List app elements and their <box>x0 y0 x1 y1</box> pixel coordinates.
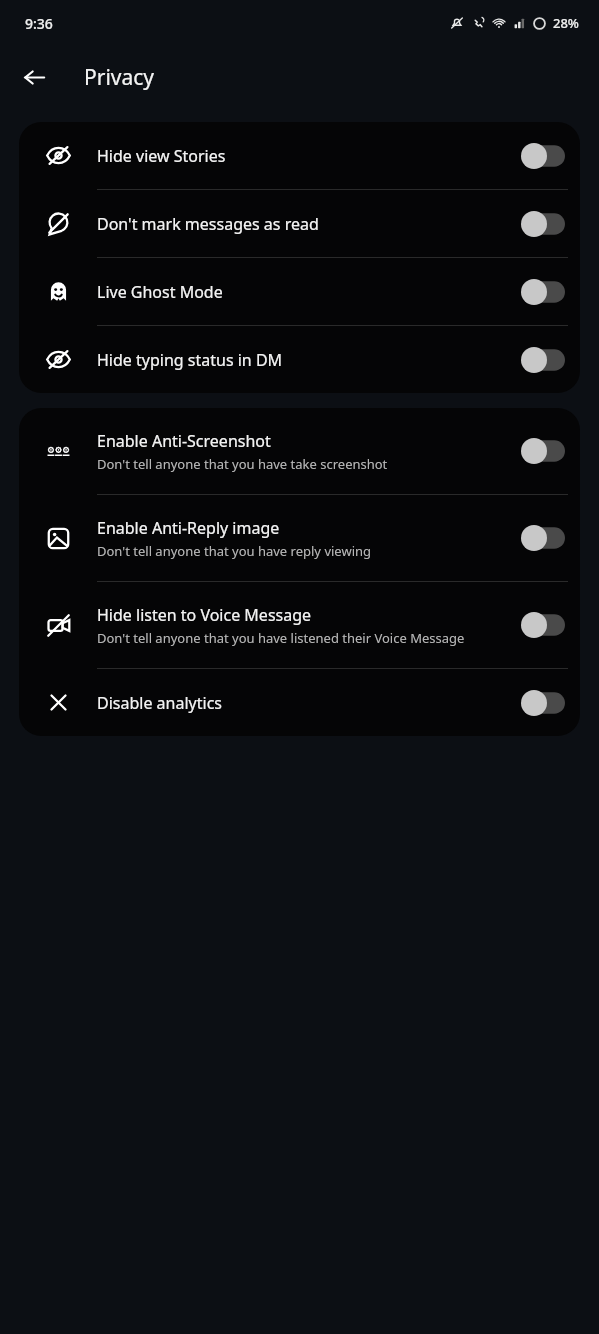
button[interactable]: Enable Anti-Screenshot <box>19 408 580 494</box>
staticText: Live Ghost Mode <box>97 281 223 303</box>
staticText: Hide view Stories <box>97 145 226 167</box>
button[interactable]: Don't mark messages as read toggle <box>506 190 580 257</box>
button[interactable]: Hide view Stories <box>19 122 580 189</box>
button[interactable]: Hide listen to Voice Message toggle <box>506 582 580 668</box>
button[interactable]: Disable analytics <box>19 669 580 736</box>
staticText: Don't tell anyone that you have listened… <box>97 629 465 647</box>
button[interactable]: Enable Anti-Reply image toggle <box>506 495 580 581</box>
button[interactable]: Back <box>12 55 56 99</box>
staticText: 28% <box>553 14 579 32</box>
staticText: Don't tell anyone that you have reply vi… <box>97 542 372 560</box>
staticText: Hide listen to Voice Message <box>97 604 312 626</box>
button[interactable]: Hide view Stories toggle <box>506 122 580 189</box>
button[interactable]: Disable analytics toggle <box>506 669 580 736</box>
button[interactable]: Hide listen to Voice Message <box>19 582 580 668</box>
button[interactable]: Live Ghost Mode toggle <box>506 258 580 325</box>
button[interactable]: Hide typing status in DM toggle <box>506 326 580 393</box>
button[interactable]: Don't mark messages as read <box>19 190 580 257</box>
button[interactable]: Live Ghost Mode <box>19 258 580 325</box>
staticText: 9:36 <box>25 14 53 33</box>
button[interactable]: Enable Anti-Reply image <box>19 495 580 581</box>
staticText: Disable analytics <box>97 692 222 714</box>
staticText: Hide typing status in DM <box>97 349 283 371</box>
staticText: Don't mark messages as read <box>97 213 319 235</box>
staticText: Enable Anti-Screenshot <box>97 430 271 452</box>
button[interactable]: Enable Anti-Screenshot toggle <box>506 408 580 494</box>
button[interactable]: Hide typing status in DM <box>19 326 580 393</box>
staticText: Don't tell anyone that you have take scr… <box>97 455 388 473</box>
staticText: Privacy <box>84 63 155 92</box>
staticText: Enable Anti-Reply image <box>97 517 280 539</box>
